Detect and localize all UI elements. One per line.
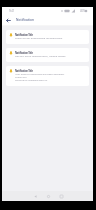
staticText: Notification Title: [15, 33, 33, 36]
button[interactable]: Back: [30, 191, 40, 201]
button[interactable]: Back: [2, 14, 14, 26]
staticText: Get 50% off on selected items, Limited v…: [15, 54, 67, 57]
staticText: 9:41: [9, 9, 15, 13]
staticText: 40%: [80, 9, 86, 13]
button[interactable]: Recent apps: [56, 191, 66, 201]
button[interactable]: Home: [43, 191, 53, 201]
button[interactable]: Notification Title: [6, 66, 89, 86]
staticText: continue to shopping with us.: [15, 78, 48, 81]
button[interactable]: Notification Title: [6, 30, 89, 44]
button[interactable]: Notification Title: [6, 48, 89, 62]
staticText: Thank you for downloading the applicatio…: [15, 36, 63, 39]
staticText: Notification Title: [15, 69, 33, 72]
staticText: Notification Title: [15, 51, 33, 54]
staticText: Your order #1234567890 has been delivere…: [15, 72, 65, 75]
staticText: Thank you: [15, 75, 27, 78]
staticText: Notification: [16, 18, 34, 22]
